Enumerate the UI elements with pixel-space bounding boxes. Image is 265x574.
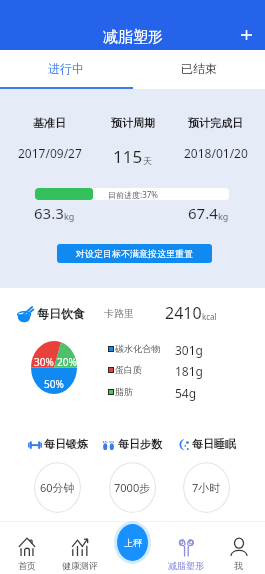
staticText: 每日饮食 — [37, 306, 85, 321]
staticText: 7000步 — [114, 480, 151, 495]
staticText: 健康测评 — [62, 560, 98, 571]
button[interactable]: 对设定目标不满意按这里重置 — [57, 244, 212, 263]
staticText: 30% — [34, 355, 54, 369]
staticText: kg — [218, 210, 229, 222]
button[interactable]: 减脂塑形 — [159, 521, 212, 574]
staticText: 目前进度:37% — [108, 189, 158, 200]
staticText: 50% — [44, 377, 64, 391]
staticText: 进行中 — [48, 61, 84, 76]
staticText: 已结束 — [181, 61, 217, 76]
button[interactable]: 上秤 — [114, 521, 151, 564]
button[interactable]: 我 — [212, 521, 265, 574]
staticText: 天 — [143, 155, 152, 166]
staticText: kg — [64, 210, 75, 222]
staticText: 2018/01/20 — [184, 145, 248, 161]
button[interactable]: 首页 — [0, 521, 53, 574]
staticText: 7小时 — [192, 480, 221, 495]
staticText: 基准日 — [33, 116, 66, 130]
staticText: kcal — [202, 311, 217, 322]
staticText: 54g — [175, 385, 197, 401]
staticText: 每日步数 — [118, 437, 162, 451]
staticText: 60分钟 — [40, 480, 75, 495]
button[interactable]: 已结束 — [132, 50, 265, 87]
staticText: 20% — [57, 355, 77, 369]
staticText: 每日睡眠 — [192, 437, 236, 451]
button[interactable]: 7000步 — [109, 462, 156, 513]
button[interactable]: 进行中 — [0, 50, 132, 87]
staticText: 首页 — [18, 560, 36, 571]
staticText: 每日锻炼 — [44, 437, 88, 451]
staticText: 减脂塑形 — [103, 28, 163, 47]
staticText: 上秤 — [124, 537, 142, 548]
staticText: 63.3 — [34, 203, 64, 223]
staticText: 脂肪 — [115, 386, 133, 397]
button[interactable]: 60分钟 — [34, 462, 81, 513]
staticText: 2017/09/27 — [18, 145, 82, 161]
staticText: 卡路里 — [104, 307, 134, 320]
button[interactable]: 7小时 — [183, 462, 230, 513]
button[interactable]: 健康测评 — [53, 521, 106, 574]
staticText: 预计完成日 — [188, 116, 243, 130]
staticText: 115 — [113, 145, 143, 168]
staticText: 碳水化合物 — [115, 343, 160, 354]
staticText: 对设定目标不满意按这里重置 — [76, 248, 193, 259]
staticText: 301g — [175, 342, 203, 358]
staticText: 减脂塑形 — [168, 560, 204, 571]
staticText: 2410 — [165, 302, 202, 324]
staticText: 蛋白质 — [115, 364, 142, 375]
button[interactable]: Add — [234, 23, 258, 47]
staticText: 预计周期 — [111, 116, 155, 130]
staticText: 181g — [175, 363, 203, 379]
staticText: 67.4 — [188, 203, 218, 223]
staticText: 我 — [234, 560, 243, 571]
